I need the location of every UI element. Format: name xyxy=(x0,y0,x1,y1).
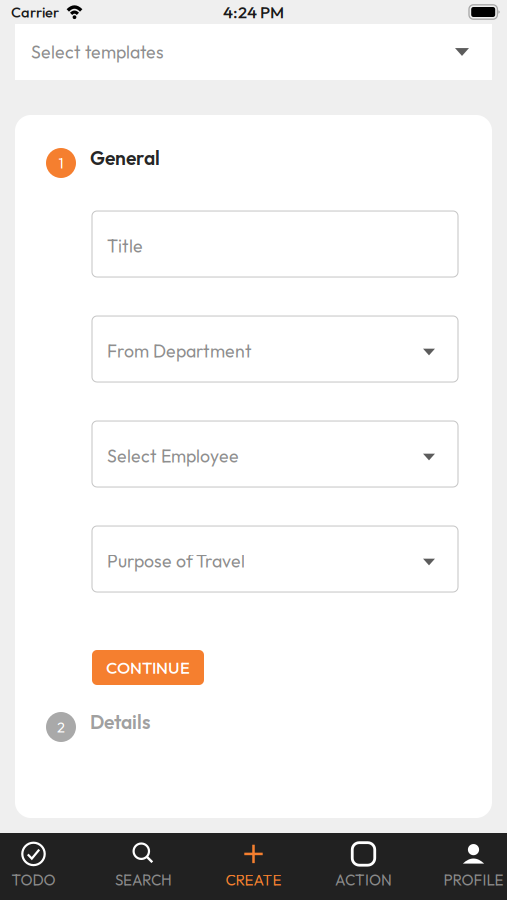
staticText: PROFILE xyxy=(443,870,503,890)
staticText: ACTION xyxy=(335,870,392,890)
button[interactable]: Select Employee xyxy=(92,421,458,487)
button[interactable]: TODO xyxy=(0,841,88,892)
staticText: Title xyxy=(107,235,143,257)
staticText: Purpose of Travel xyxy=(107,550,245,572)
staticText: From Department xyxy=(107,340,252,362)
staticText: General xyxy=(90,146,160,170)
button[interactable]: CONTINUE xyxy=(92,650,204,685)
button[interactable]: Purpose of Travel xyxy=(92,526,458,592)
staticText: SEARCH xyxy=(115,870,172,890)
button[interactable]: Title xyxy=(92,211,458,277)
button[interactable]: Select templates xyxy=(15,24,492,80)
staticText: CREATE xyxy=(225,870,281,890)
staticText: 1 xyxy=(58,154,63,172)
button[interactable]: SEARCH xyxy=(88,841,198,892)
staticText: 2 xyxy=(57,718,65,736)
staticText: Carrier xyxy=(11,3,59,21)
button[interactable]: ACTION xyxy=(308,841,418,892)
staticText: TODO xyxy=(11,870,55,890)
staticText: Details xyxy=(90,710,151,734)
staticText: Select templates xyxy=(31,41,164,63)
button[interactable]: From Department xyxy=(92,316,458,382)
button[interactable]: PROFILE xyxy=(418,841,507,892)
staticText: Select Employee xyxy=(107,445,239,467)
button[interactable]: CREATE xyxy=(198,841,308,892)
staticText: 4:24 PM xyxy=(223,1,284,23)
staticText: CONTINUE xyxy=(106,657,190,678)
